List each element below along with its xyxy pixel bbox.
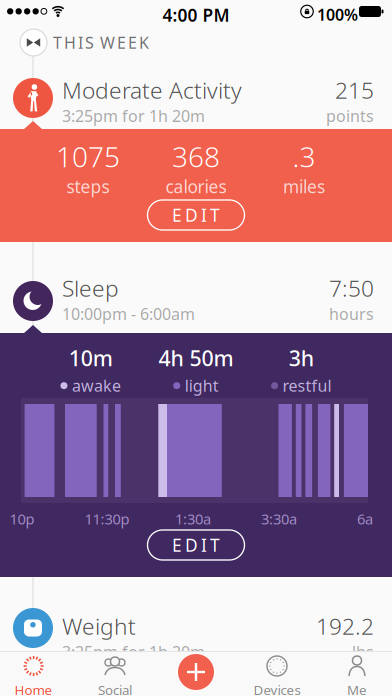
- button[interactable]: [178, 654, 214, 690]
- staticText: 6a: [357, 509, 373, 528]
- staticText: 3h: [289, 344, 314, 372]
- staticText: lbs: [352, 641, 374, 662]
- staticText: steps: [66, 175, 109, 198]
- button[interactable]: Home: [2, 651, 66, 696]
- staticText: Devices: [253, 681, 300, 696]
- staticText: 10:00pm - 6:00am: [62, 303, 195, 324]
- staticText: hours: [329, 303, 374, 324]
- button[interactable]: Sleep: [0, 256, 392, 326]
- button[interactable]: Social: [83, 651, 147, 696]
- staticText: 3:30a: [261, 509, 297, 528]
- staticText: 4h 50m: [158, 344, 233, 372]
- staticText: 4:00 PM: [162, 3, 229, 26]
- staticText: Home: [15, 681, 53, 696]
- staticText: 3:25pm for 1h 20m: [62, 105, 205, 126]
- staticText: E D I T: [172, 533, 220, 556]
- staticText: 3:25pm for 1h 20m: [62, 641, 205, 662]
- staticText: 100%: [317, 4, 358, 25]
- staticText: T H I S W E E K: [53, 32, 149, 53]
- button[interactable]: Weight: [0, 594, 392, 664]
- staticText: Weight: [62, 611, 136, 641]
- staticText: 368: [172, 138, 220, 175]
- staticText: Moderate Activity: [62, 75, 242, 105]
- staticText: 10p: [9, 509, 34, 528]
- staticText: Me: [347, 681, 367, 696]
- staticText: 192.2: [316, 611, 374, 641]
- staticText: 7:50: [329, 273, 374, 303]
- staticText: 10m: [69, 344, 113, 372]
- button[interactable]: T H I S W E E K: [0, 25, 392, 59]
- button[interactable]: Me: [325, 651, 389, 696]
- staticText: 215: [335, 75, 374, 105]
- staticText: E D I T: [172, 203, 220, 226]
- staticText: calories: [165, 175, 226, 198]
- staticText: 1:30a: [175, 509, 211, 528]
- button[interactable]: E D I T: [147, 200, 244, 230]
- button[interactable]: Moderate Activity: [0, 58, 392, 128]
- staticText: Sleep: [62, 273, 119, 303]
- button[interactable]: E D I T: [147, 530, 244, 560]
- staticText: Social: [98, 681, 132, 696]
- staticText: restful: [283, 375, 332, 396]
- staticText: awake: [72, 375, 121, 396]
- staticText: light: [185, 375, 219, 396]
- button[interactable]: Devices: [245, 651, 309, 696]
- staticText: 1075: [56, 138, 120, 175]
- staticText: points: [326, 105, 374, 126]
- staticText: .3: [292, 138, 315, 175]
- staticText: miles: [283, 175, 325, 198]
- staticText: 11:30p: [84, 509, 129, 528]
